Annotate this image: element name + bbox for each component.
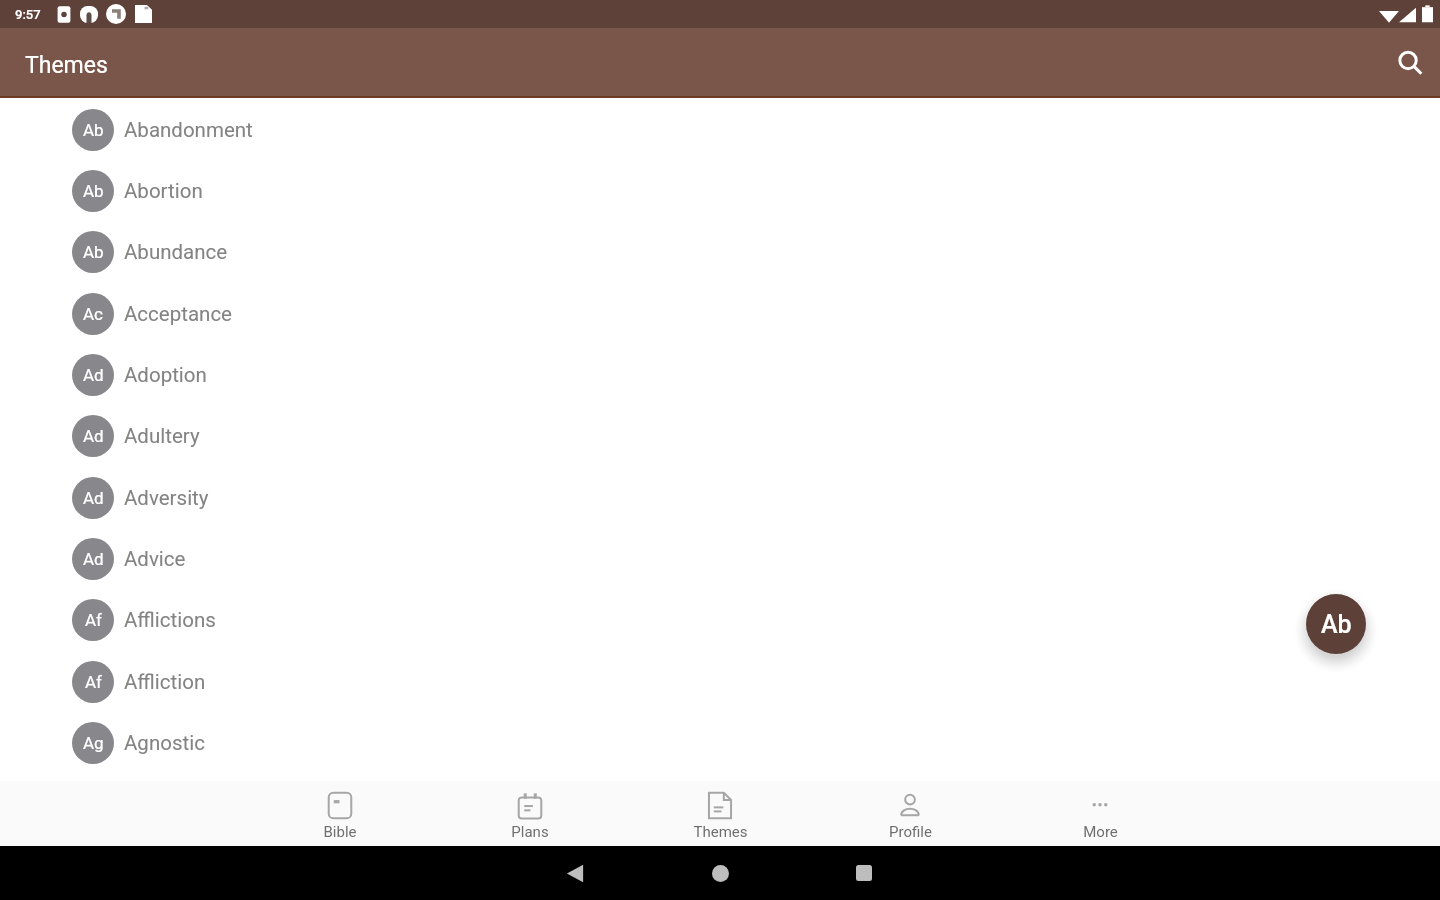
button[interactable]: Ad <box>0 528 1440 589</box>
staticText: Adversity <box>124 486 209 510</box>
button[interactable]: Af <box>0 589 1440 650</box>
staticText: Themes <box>25 52 108 79</box>
staticText: Ad <box>83 549 104 569</box>
button[interactable]: More <box>1005 781 1195 846</box>
button[interactable]: Plans <box>435 781 625 846</box>
button[interactable]: Back <box>547 846 603 900</box>
staticText: Af <box>85 610 102 630</box>
button[interactable]: Ad <box>0 467 1440 528</box>
staticText: Ad <box>83 365 104 385</box>
staticText: Plans <box>511 823 549 841</box>
button[interactable]: Bible <box>245 781 435 846</box>
staticText: Bible <box>323 823 357 841</box>
button[interactable]: Ab <box>0 221 1440 282</box>
staticText: Ac <box>83 304 103 324</box>
staticText: Abortion <box>124 179 203 203</box>
button[interactable]: Ac <box>0 283 1440 344</box>
button[interactable]: Ad <box>0 344 1440 405</box>
button[interactable]: Search <box>1382 35 1438 91</box>
button[interactable]: Themes <box>625 781 815 846</box>
staticText: 9:57 <box>15 7 41 22</box>
staticText: Affliction <box>124 670 206 694</box>
staticText: Ad <box>83 426 104 446</box>
staticText: Adultery <box>124 424 200 448</box>
staticText: Advice <box>124 547 186 571</box>
button[interactable]: Profile <box>815 781 1005 846</box>
button[interactable]: Af <box>0 651 1440 712</box>
button[interactable]: Ad <box>0 405 1440 466</box>
staticText: Agnostic <box>124 731 205 755</box>
staticText: Abundance <box>124 240 228 264</box>
staticText: Ab <box>83 181 104 201</box>
staticText: Themes <box>693 823 748 841</box>
button[interactable]: Recent apps <box>836 846 892 900</box>
staticText: Ag <box>83 733 104 753</box>
staticText: Adoption <box>124 363 207 387</box>
button[interactable]: Home <box>692 846 748 900</box>
staticText: Profile <box>889 823 932 841</box>
button[interactable]: Ab <box>0 99 1440 160</box>
staticText: Acceptance <box>124 302 232 326</box>
staticText: Afflictions <box>124 608 216 632</box>
staticText: Ab <box>83 242 104 262</box>
staticText: Ab <box>83 120 104 140</box>
button[interactable]: Ab <box>0 160 1440 221</box>
staticText: Af <box>85 672 102 692</box>
staticText: Ad <box>83 488 104 508</box>
staticText: More <box>1083 823 1118 841</box>
staticText: Abandonment <box>124 118 253 142</box>
button[interactable]: Jump to letter <box>1306 594 1366 654</box>
staticText: Ab <box>1321 610 1352 639</box>
button[interactable]: Ag <box>0 712 1440 773</box>
